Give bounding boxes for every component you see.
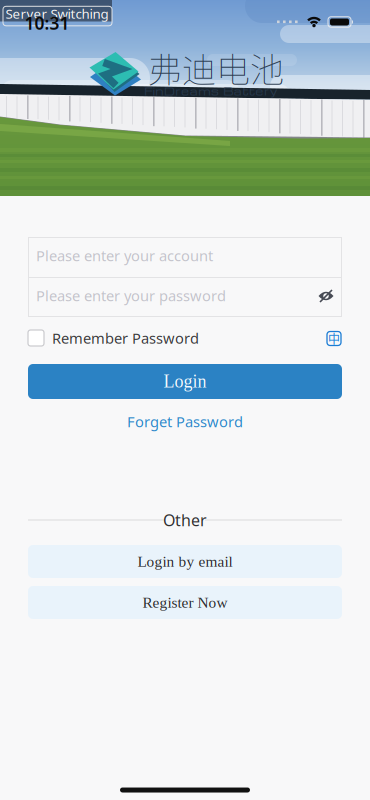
staticText: Remember Password (52, 328, 199, 348)
button[interactable]: Forget Password (127, 412, 243, 431)
staticText: 10:31 (24, 11, 69, 34)
staticText: Login by email (137, 553, 232, 570)
staticText: Register Now (142, 594, 227, 611)
button[interactable]: Register Now (28, 586, 342, 619)
staticText: Please enter your account (36, 246, 213, 265)
button[interactable]: Switch language (327, 330, 341, 347)
staticText: 弗迪电池 (148, 43, 284, 93)
staticText: FinDreams Battery (144, 84, 278, 98)
button[interactable]: Remember Password (28, 328, 342, 348)
button[interactable]: Show password (317, 289, 334, 303)
staticText: Server Switching (5, 5, 108, 22)
staticText: 中 (328, 330, 340, 347)
staticText: Forget Password (127, 412, 243, 431)
button[interactable]: Login (28, 364, 342, 399)
staticText: Other (163, 509, 207, 531)
button[interactable]: Server Switching (0, 0, 112, 26)
staticText: Login (163, 371, 206, 391)
staticText: Please enter your password (36, 286, 226, 305)
button[interactable]: Login by email (28, 545, 342, 578)
